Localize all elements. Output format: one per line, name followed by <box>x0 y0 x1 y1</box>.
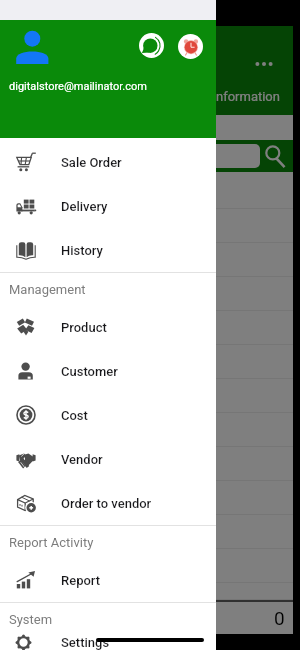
staticText: Customer <box>61 364 118 379</box>
staticText: Customer information <box>153 89 280 104</box>
button[interactable]: Messages <box>139 33 164 58</box>
button[interactable]: Vendor <box>0 437 216 481</box>
button[interactable] <box>10 144 260 168</box>
staticText: Settings <box>61 635 110 650</box>
staticText: Order to vendor <box>61 496 152 511</box>
staticText: digitalstore@mailinator.com <box>9 80 147 93</box>
staticText: Management <box>9 282 86 297</box>
button[interactable]: Settings <box>0 635 216 650</box>
button[interactable]: Cost <box>0 393 216 437</box>
staticText: History <box>61 243 103 258</box>
button[interactable]: Search <box>262 139 290 167</box>
staticText: 0 <box>274 607 285 629</box>
button[interactable]: More options <box>248 48 280 80</box>
button[interactable]: Report <box>0 558 216 602</box>
button[interactable]: Order to vendor <box>0 481 216 525</box>
staticText: Product <box>61 320 107 335</box>
staticText: System <box>9 612 53 627</box>
button[interactable]: Customer <box>0 349 216 393</box>
button[interactable]: Sale Order <box>0 140 216 184</box>
button[interactable]: Product <box>0 305 216 349</box>
button[interactable]: Alarm <box>178 34 203 59</box>
staticText: Vendor <box>61 452 103 467</box>
button[interactable]: Delivery <box>0 184 216 228</box>
staticText: Report <box>61 573 101 588</box>
button[interactable]: History <box>0 228 216 272</box>
staticText: Cost <box>61 408 88 423</box>
staticText: Sale Order <box>61 155 122 170</box>
staticText: Report Activity <box>9 535 94 550</box>
staticText: Delivery <box>61 199 108 214</box>
